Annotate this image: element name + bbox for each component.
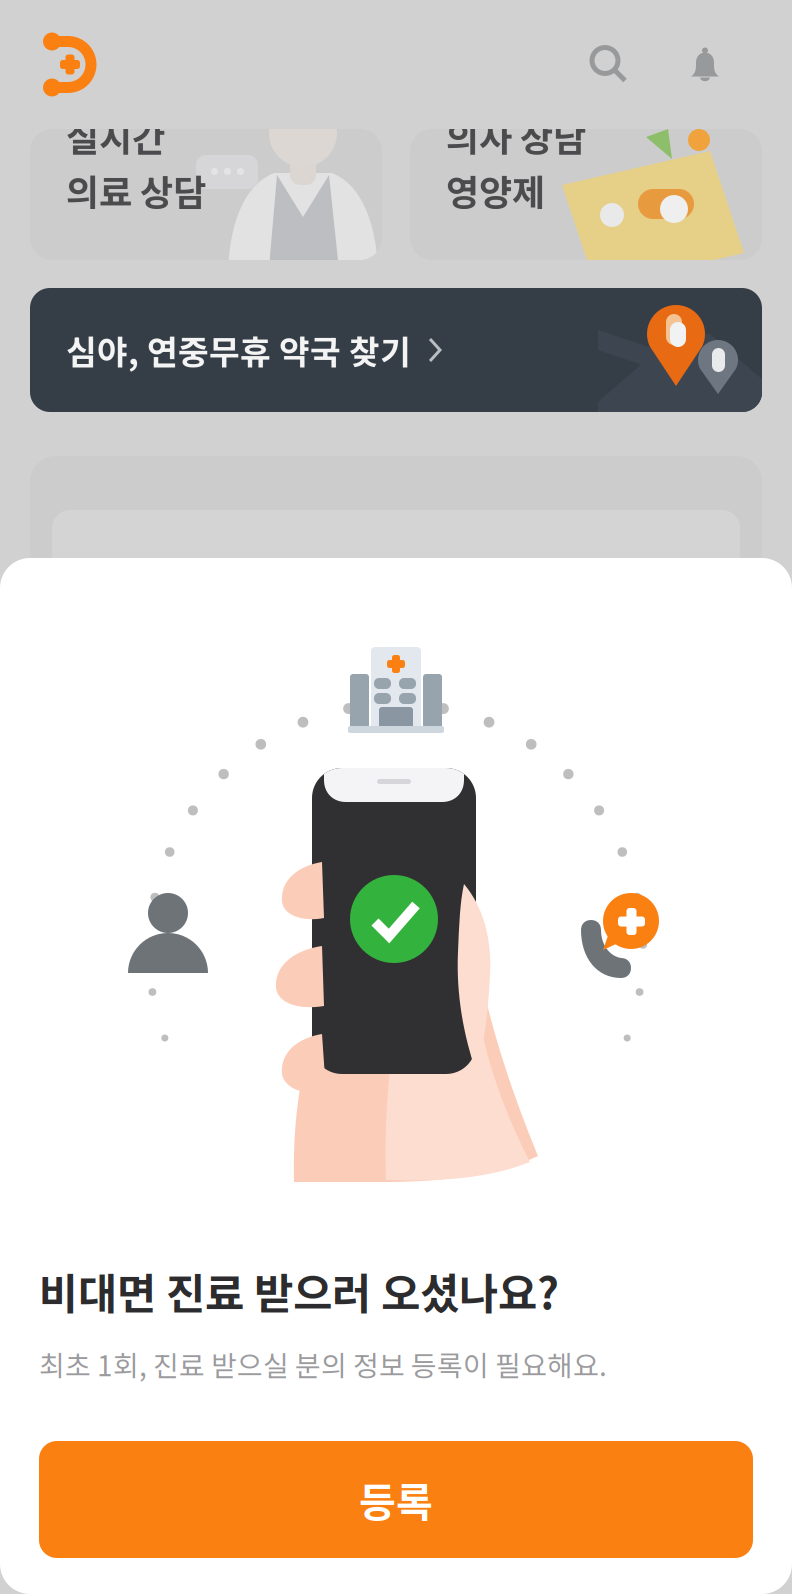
button[interactable]: 심야, 연중무휴 약국 찾기 [30, 288, 762, 412]
staticText: 등록 [359, 1470, 433, 1528]
button[interactable]: 의사 상남 [410, 129, 762, 260]
staticText: 의료 상담 [66, 164, 206, 216]
button[interactable]: 등록 [39, 1441, 753, 1558]
staticText: 비대면 진료 받으러 오셨나요? [39, 1260, 559, 1322]
button[interactable]: 실시간 [30, 129, 382, 260]
button[interactable]: Search [586, 41, 632, 87]
button[interactable]: Notifications [682, 41, 728, 87]
staticText: 의사 상남 [446, 110, 586, 162]
staticText: 영양제 [446, 164, 545, 216]
button[interactable]: Home [34, 30, 102, 98]
staticText: 실시간 [66, 110, 165, 162]
staticText: 최초 1회, 진료 받으실 분의 정보 등록이 필요해요. [39, 1344, 607, 1384]
staticText: 심야, 연중무휴 약국 찾기 [66, 326, 411, 374]
